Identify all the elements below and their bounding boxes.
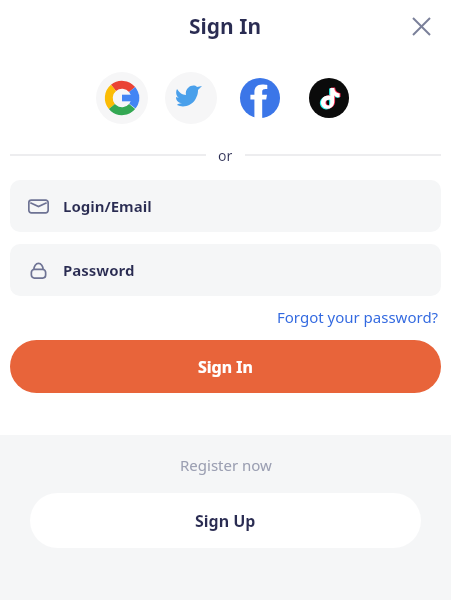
button[interactable]: Forgot your password? (275, 305, 441, 329)
staticText: Forgot your password? (277, 307, 439, 327)
button[interactable]: Register now (180, 455, 272, 475)
button[interactable]: Sign in with Twitter (165, 72, 217, 124)
button[interactable]: Sign in with TikTok (303, 72, 355, 124)
button[interactable]: Sign in with Google (96, 72, 148, 124)
button[interactable]: Sign in with Facebook (234, 72, 286, 124)
button[interactable]: Close (401, 6, 441, 46)
staticText: Password (63, 260, 135, 280)
staticText: Sign In (198, 356, 253, 378)
staticText: Sign In (189, 12, 262, 41)
button[interactable]: Password (10, 244, 441, 296)
button[interactable]: Login/Email (10, 180, 441, 232)
staticText: or (218, 146, 233, 165)
button[interactable]: Sign In (10, 340, 441, 393)
staticText: Sign Up (195, 510, 256, 532)
button[interactable]: Sign Up (30, 493, 421, 548)
staticText: Login/Email (63, 196, 152, 216)
